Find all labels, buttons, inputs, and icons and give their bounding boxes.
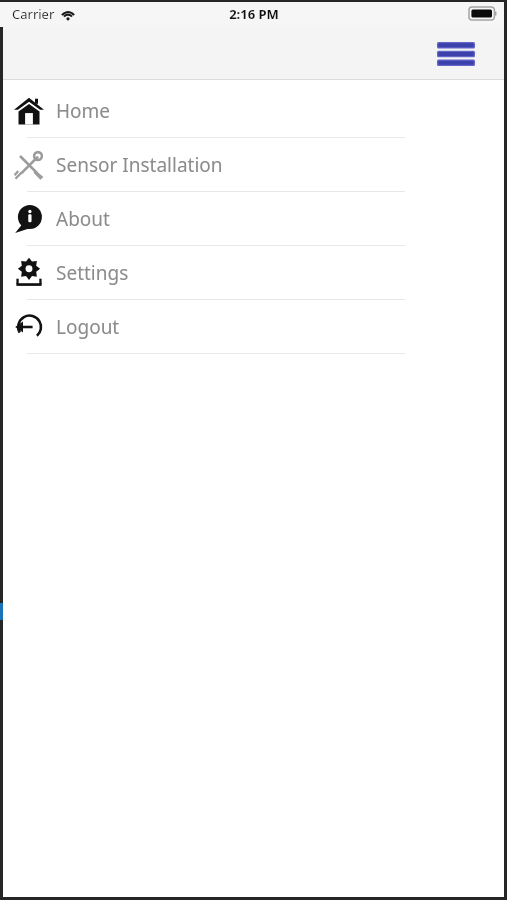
button[interactable]: Sensor Installation	[0, 138, 507, 191]
staticText: Logout	[56, 314, 120, 340]
button[interactable]: Logout	[0, 300, 507, 353]
staticText: Home	[56, 98, 111, 124]
button[interactable]: About	[0, 192, 507, 245]
staticText: 2:16 PM	[229, 5, 279, 23]
staticText: About	[56, 206, 110, 232]
button[interactable]: Open navigation menu	[431, 35, 481, 73]
staticText: Carrier	[12, 5, 55, 23]
staticText: Sensor Installation	[56, 152, 223, 178]
staticText: Settings	[56, 260, 129, 286]
button[interactable]: Settings	[0, 246, 507, 299]
button[interactable]: Home	[0, 84, 507, 137]
